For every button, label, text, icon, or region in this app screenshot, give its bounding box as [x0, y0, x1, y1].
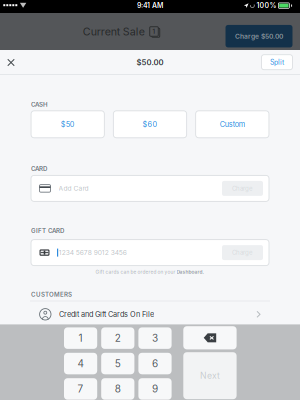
staticText: Split	[270, 58, 284, 66]
staticText: 2	[115, 332, 121, 344]
staticText: CASH	[31, 101, 48, 108]
button[interactable]: $60	[113, 111, 187, 138]
button[interactable]: 2	[101, 327, 134, 349]
staticText: 9	[152, 383, 158, 395]
button[interactable]: Delete	[183, 326, 237, 349]
staticText: Dashboard.	[176, 269, 204, 275]
staticText: Gift cards can be ordered on your	[95, 269, 176, 275]
staticText: 100%	[257, 1, 277, 10]
staticText: 4	[78, 357, 84, 370]
staticText: 9:41 AM	[137, 1, 163, 10]
button[interactable]: Charge	[222, 181, 263, 196]
staticText: Credit and Gift Cards On File	[59, 310, 154, 319]
staticText: Charge	[232, 185, 253, 192]
button[interactable]: $50	[31, 111, 104, 138]
staticText: $50	[61, 120, 75, 129]
button[interactable]: 9	[138, 378, 172, 400]
staticText: Add Card	[58, 184, 88, 192]
staticText: 8	[115, 383, 121, 395]
button[interactable]: Charge	[222, 245, 263, 260]
staticText: 6	[152, 357, 158, 370]
staticText: 7	[78, 383, 84, 395]
button[interactable]: Custom	[196, 111, 269, 138]
staticText: $60	[142, 120, 157, 129]
staticText: 1	[79, 332, 83, 344]
button[interactable]: Split	[261, 55, 292, 70]
staticText: $50.00	[136, 58, 163, 67]
staticText: Current Sale	[83, 25, 145, 38]
staticText: 5	[115, 357, 121, 370]
staticText: Charge	[232, 249, 253, 256]
button[interactable]: 6	[138, 353, 172, 374]
button[interactable]: Next	[183, 352, 237, 399]
button[interactable]: 7	[64, 378, 97, 400]
staticText: GIFT CARD	[31, 227, 64, 234]
button[interactable]: Close	[0, 50, 22, 75]
staticText: Next	[200, 370, 220, 381]
staticText: 1234 5678 9012 3456	[59, 249, 127, 257]
staticText: Custom	[220, 120, 245, 129]
staticText: CUSTOMERS	[31, 291, 72, 298]
staticText: 1	[152, 28, 155, 35]
button[interactable]: Credit and Gift Cards On File	[0, 304, 300, 324]
staticText: 3	[152, 332, 158, 344]
staticText: Charge $50.00	[235, 32, 283, 40]
button[interactable]: Charge $50.00	[225, 25, 292, 47]
button[interactable]: 3	[138, 327, 172, 349]
button[interactable]: 5	[101, 353, 134, 374]
button[interactable]: 1	[64, 327, 97, 349]
staticText: CARD	[31, 165, 47, 172]
button[interactable]: 4	[64, 353, 97, 374]
button[interactable]: 8	[101, 378, 134, 400]
